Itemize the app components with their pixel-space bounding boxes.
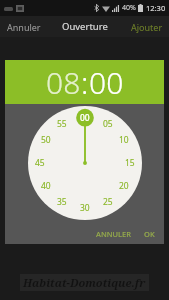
button[interactable]: ANNULER: [92, 227, 136, 241]
staticText: OK: [144, 229, 155, 239]
staticText: 45: [35, 157, 45, 169]
staticText: 55: [57, 118, 67, 130]
staticText: 05: [103, 118, 113, 130]
staticText: 20: [119, 180, 129, 192]
button[interactable]: 00: [89, 62, 124, 103]
button[interactable]: Ajouter: [114, 16, 169, 37]
button[interactable]: OK: [140, 227, 159, 241]
staticText: 10: [119, 134, 129, 146]
staticText: 12:30: [146, 3, 166, 13]
staticText: 30: [80, 202, 90, 214]
button[interactable]: 08: [46, 62, 81, 103]
staticText: 00: [80, 112, 90, 124]
staticText: 40: [41, 180, 51, 192]
staticText: 50: [41, 134, 51, 146]
staticText: :: [81, 62, 89, 103]
staticText: ANNULER: [96, 229, 132, 239]
staticText: 25: [103, 196, 113, 208]
staticText: 15: [125, 157, 135, 169]
staticText: Habitat-Domotique.fr: [23, 275, 146, 290]
staticText: Ouverture: [62, 20, 108, 33]
staticText: Annuler: [7, 21, 41, 33]
button[interactable]: Minute picker, 00 selected: [28, 106, 142, 220]
staticText: Ajouter: [131, 21, 163, 33]
staticText: 40%: [122, 3, 136, 13]
button[interactable]: Annuler: [0, 16, 56, 37]
staticText: 35: [57, 196, 67, 208]
